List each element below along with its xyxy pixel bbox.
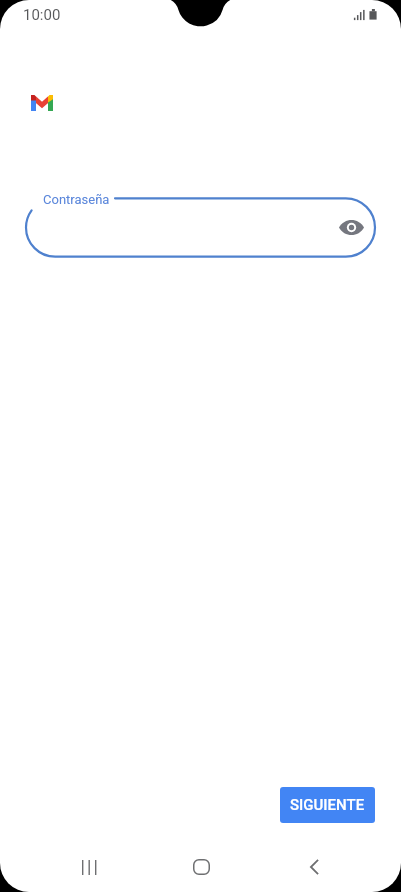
staticText: 10:00: [23, 6, 61, 24]
button[interactable]: Mostrar contraseña: [20, 188, 386, 268]
staticText: SIGUIENTE: [290, 796, 365, 814]
staticText: Contraseña: [43, 192, 110, 207]
button[interactable]: Mostrar contraseña: [331, 207, 372, 247]
button[interactable]: Home: [177, 843, 225, 891]
button[interactable]: Recent apps: [65, 843, 113, 891]
button[interactable]: Back: [290, 843, 338, 891]
button[interactable]: SIGUIENTE: [280, 787, 375, 823]
